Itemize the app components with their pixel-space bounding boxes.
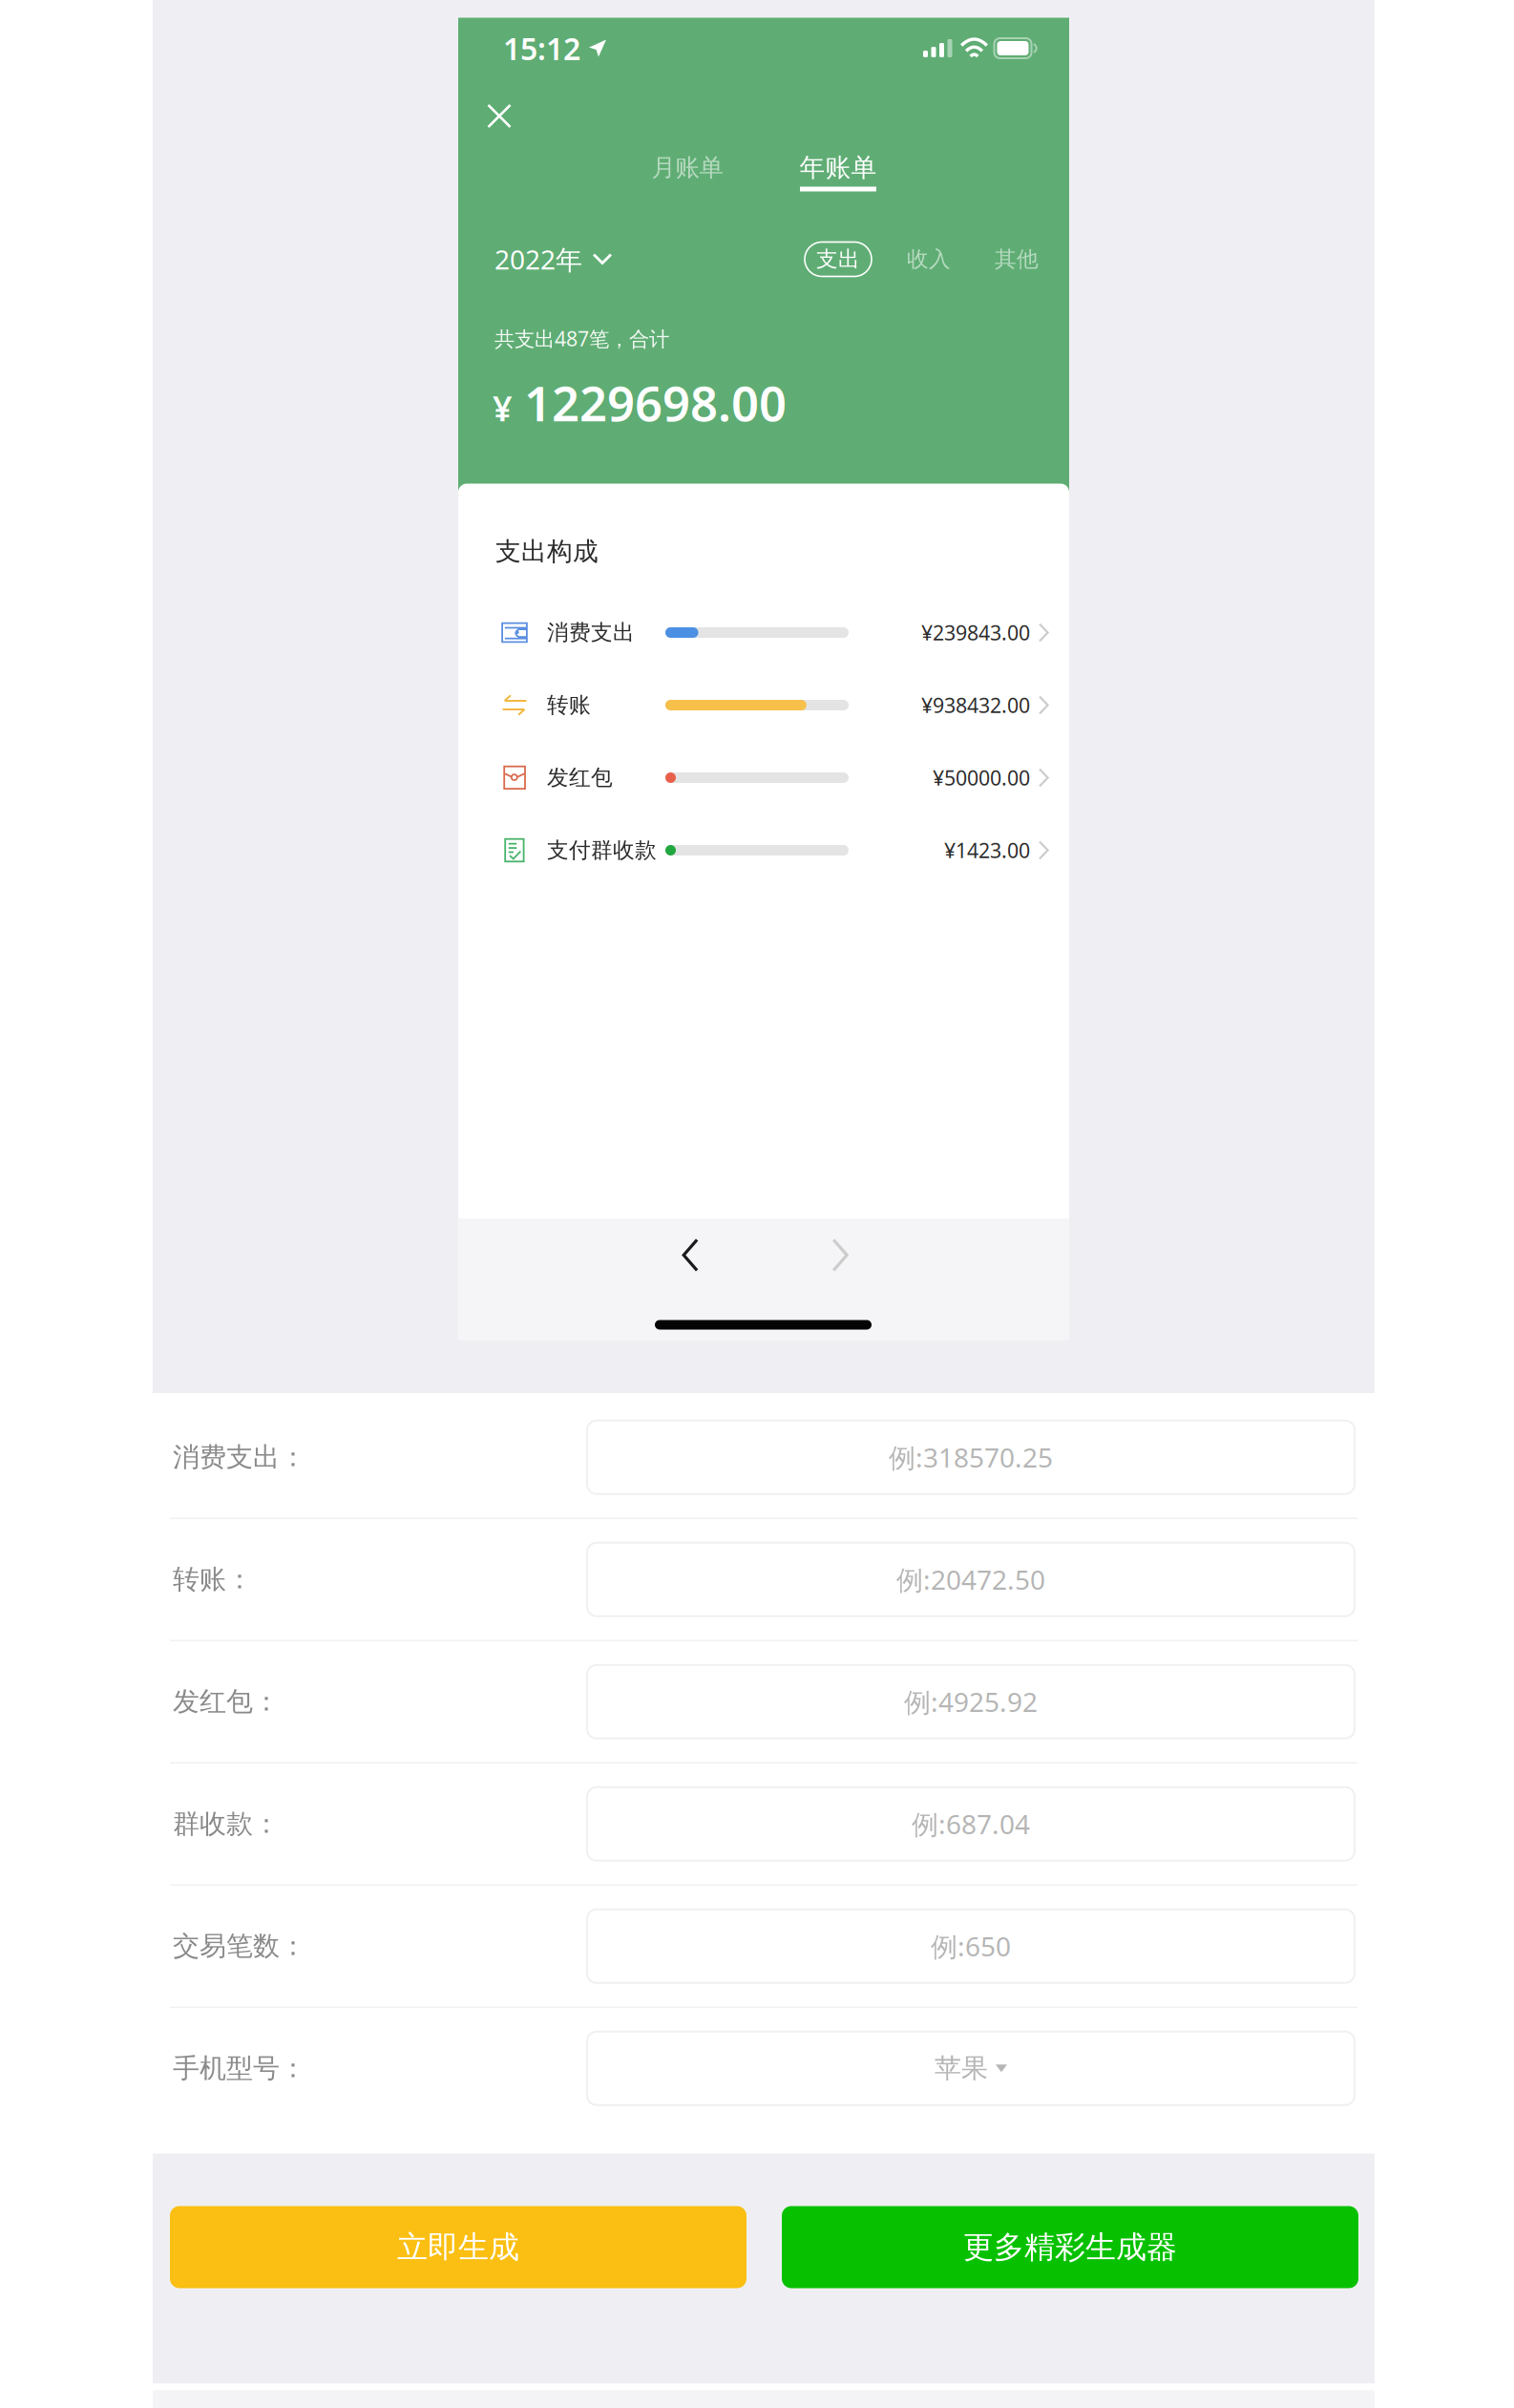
button[interactable]: 立即生成 <box>170 2206 746 2288</box>
button[interactable]: Close <box>470 86 529 146</box>
staticText: 2022年 <box>494 241 582 277</box>
staticText: 群收款： <box>173 1808 280 1840</box>
staticText: 例:650 <box>931 1928 1011 1964</box>
staticText: 消费支出： <box>173 1441 306 1474</box>
button[interactable]: 2022年 <box>494 235 611 283</box>
button[interactable]: 收入 <box>907 242 951 276</box>
button[interactable]: 年账单 <box>781 148 895 191</box>
button[interactable]: Next page <box>813 1228 867 1282</box>
staticText: 支出 <box>816 246 860 272</box>
staticText: 支出构成 <box>495 536 599 567</box>
button[interactable]: 更多精彩生成器 <box>782 2206 1358 2288</box>
button[interactable]: 月账单 <box>630 148 745 191</box>
button[interactable]: 例:20472.50 <box>587 1543 1355 1616</box>
staticText: 例:687.04 <box>912 1806 1030 1842</box>
staticText: 发红包： <box>173 1685 280 1718</box>
staticText: 月账单 <box>652 153 723 182</box>
staticText: 消费支出 <box>547 619 635 646</box>
button[interactable]: 支出 <box>805 242 872 276</box>
staticText: ¥1423.00 <box>944 837 1030 864</box>
staticText: ¥ <box>493 385 513 431</box>
button[interactable]: 支付群收款 <box>458 814 1069 887</box>
staticText: 交易笔数： <box>173 1930 306 1963</box>
button[interactable]: 例:650 <box>587 1909 1355 1983</box>
staticText: 收入 <box>907 246 951 272</box>
staticText: 立即生成 <box>397 2228 519 2266</box>
button[interactable]: Previous page <box>663 1228 717 1282</box>
staticText: ¥239843.00 <box>921 619 1030 646</box>
button[interactable]: 例:4925.92 <box>587 1665 1355 1738</box>
button[interactable]: 其他 <box>995 242 1039 276</box>
staticText: 发红包 <box>547 764 613 791</box>
staticText: 转账 <box>547 692 591 718</box>
staticText: 例:4925.92 <box>904 1684 1038 1719</box>
staticText: 例:318570.25 <box>889 1440 1053 1475</box>
staticText: 苹果 <box>935 2052 988 2085</box>
button[interactable]: 转账 <box>458 669 1069 741</box>
button[interactable]: 消费支出 <box>458 596 1069 669</box>
button[interactable]: 例:687.04 <box>587 1787 1355 1861</box>
staticText: ¥50000.00 <box>933 764 1030 791</box>
staticText: ¥938432.00 <box>921 692 1030 719</box>
staticText: 1229698.00 <box>524 370 787 435</box>
staticText: 共支出487笔，合计 <box>494 325 669 352</box>
staticText: 转账： <box>173 1563 253 1596</box>
button[interactable]: 例:318570.25 <box>587 1421 1355 1494</box>
staticText: 更多精彩生成器 <box>963 2228 1177 2266</box>
button[interactable]: 苹果 <box>587 2032 1355 2105</box>
staticText: 15:12 <box>503 28 580 69</box>
staticText: 例:20472.50 <box>896 1562 1045 1597</box>
staticText: 其他 <box>995 246 1039 272</box>
staticText: 支付群收款 <box>547 837 657 864</box>
button[interactable]: 发红包 <box>458 741 1069 814</box>
staticText: 手机型号： <box>173 2052 306 2085</box>
staticText: 年账单 <box>799 152 877 183</box>
